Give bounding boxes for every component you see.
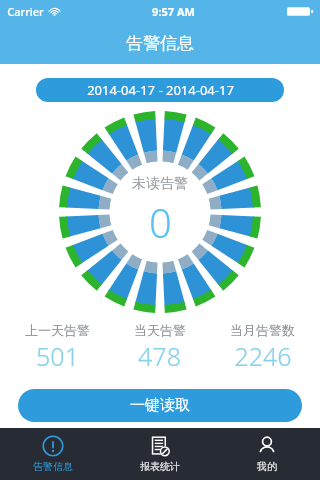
- staticText: 0: [149, 195, 172, 249]
- staticText: 2246: [234, 339, 292, 373]
- button[interactable]: 2014-04-17 - 2014-04-17: [36, 78, 284, 102]
- staticText: 我的: [257, 460, 277, 473]
- staticText: 当月告警数: [230, 322, 295, 338]
- staticText: 当天告警: [134, 322, 186, 338]
- staticText: 报表统计: [140, 460, 180, 473]
- staticText: 告警信息: [33, 460, 73, 473]
- staticText: 告警信息: [126, 33, 194, 54]
- staticText: 2014-04-17 - 2014-04-17: [87, 81, 234, 99]
- staticText: 一键读取: [130, 396, 190, 415]
- staticText: Carrier: [7, 4, 44, 19]
- button[interactable]: 报表统计: [106, 428, 213, 480]
- staticText: 上一天告警: [25, 322, 90, 338]
- staticText: 501: [36, 339, 79, 373]
- button[interactable]: 我的: [213, 428, 320, 480]
- staticText: 9:57 AM: [152, 4, 195, 19]
- button[interactable]: 一键读取: [18, 389, 302, 422]
- button[interactable]: 告警信息: [0, 428, 106, 480]
- staticText: 未读告警: [132, 175, 188, 193]
- staticText: 478: [138, 339, 181, 373]
